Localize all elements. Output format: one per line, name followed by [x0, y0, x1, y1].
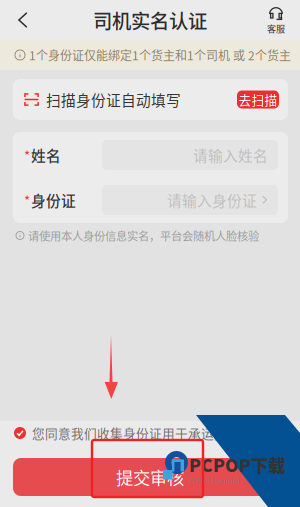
staticText: 客服 [267, 22, 285, 35]
staticText: 1个身份证仅能绑定1个货主和1个司机 或 2个货主 [29, 46, 291, 64]
staticText: PCPOP下载 [189, 452, 285, 477]
staticText: 身份证 [31, 189, 76, 211]
staticText: 提交审核 [116, 464, 184, 490]
staticText: * [24, 190, 30, 210]
button[interactable]: 去扫描 [237, 90, 279, 108]
staticText: PCPOP Download [189, 477, 240, 484]
staticText: 姓名 [31, 144, 61, 166]
staticText: 去扫描 [238, 90, 277, 109]
button[interactable]: 提交审核 [13, 458, 287, 496]
staticText: 您同意我们收集身份证用于承运资质审核 [32, 424, 266, 442]
staticText: * [24, 145, 30, 165]
staticText: 请输入姓名 [193, 144, 268, 166]
button[interactable]: * [13, 132, 288, 177]
button[interactable]: * [13, 177, 288, 222]
staticText: 请输入身份证 [167, 189, 257, 211]
button[interactable]: Customer service [252, 0, 300, 40]
staticText: 请使用本人身份信息实名，平台会随机人脸核验 [28, 227, 259, 244]
staticText: 扫描身份证自动填写 [46, 89, 181, 110]
button[interactable]: Back [0, 0, 48, 40]
staticText: 司机实名认证 [93, 6, 207, 34]
button[interactable]: Agree [14, 427, 26, 439]
